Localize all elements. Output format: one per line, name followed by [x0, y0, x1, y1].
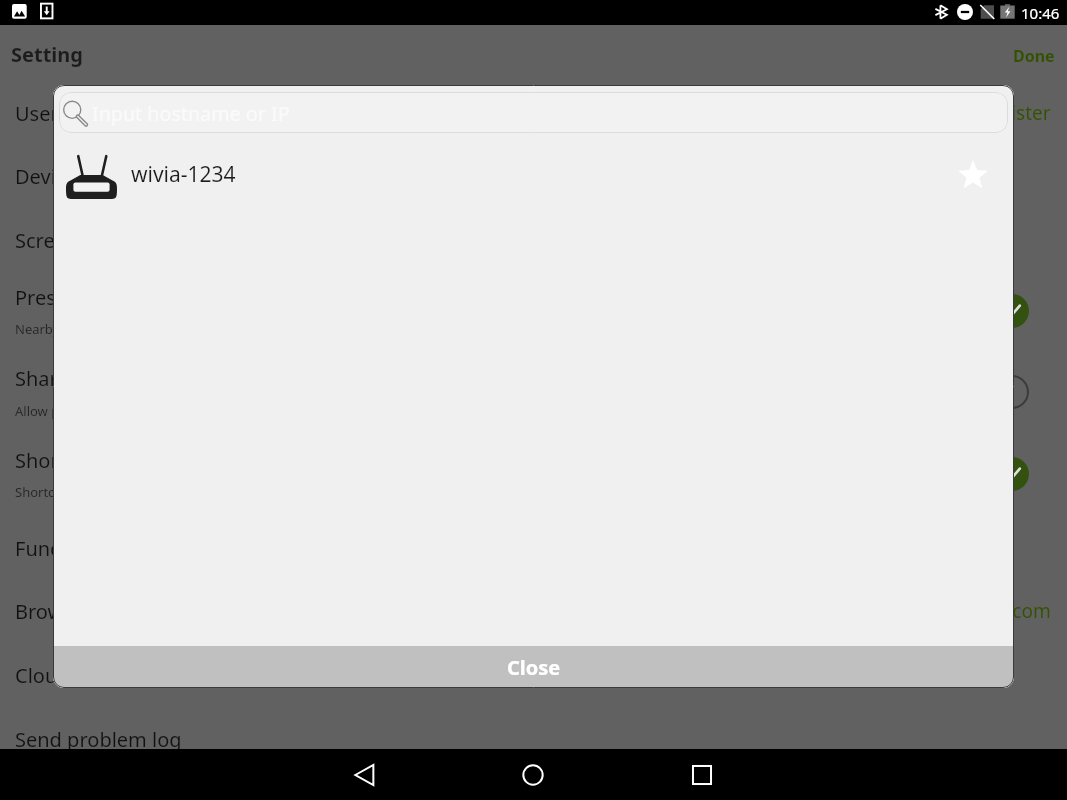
staticText: www.wivia.com [913, 598, 1051, 624]
staticText: Sharing [15, 365, 88, 392]
button[interactable]: Browser [0, 591, 1067, 631]
button[interactable]: Disabled [991, 371, 1033, 413]
button[interactable]: Recents [682, 755, 722, 795]
button[interactable]: Cloud storage [0, 655, 1067, 695]
button[interactable]: Shortcut [0, 440, 1067, 480]
staticText: Register [977, 100, 1051, 126]
button[interactable]: Presentation [0, 277, 1067, 317]
button[interactable]: Send problem log [0, 719, 1067, 759]
button[interactable]: Input hostname or IP [59, 92, 1008, 133]
staticText: Setting [11, 41, 83, 68]
staticText: Done [1013, 45, 1055, 67]
staticText: Allow people to share [15, 402, 147, 420]
staticText: Presentation [15, 284, 135, 311]
staticText: wivia-1234 [131, 160, 236, 189]
staticText: Close [507, 654, 561, 681]
staticText: Browser [15, 598, 93, 625]
staticText: 10:46 [1021, 3, 1060, 23]
staticText: Nearby devices [15, 320, 108, 338]
button[interactable]: Screen resolution [0, 220, 1067, 260]
button[interactable]: wivia-1234 [53, 133, 1014, 213]
button[interactable]: Sharing [0, 358, 1067, 398]
button[interactable]: Favorite [949, 151, 997, 199]
staticText: Shortcut [15, 447, 96, 474]
button[interactable]: Device name [0, 156, 1067, 196]
staticText: User name [15, 100, 118, 127]
staticText: Screen resolution [15, 227, 179, 254]
staticText: Shortcut on desktop [15, 483, 139, 501]
button[interactable]: User name [0, 93, 1067, 133]
button[interactable]: Back [345, 755, 385, 795]
button[interactable]: Enabled [991, 453, 1033, 495]
staticText: Device name [15, 163, 136, 190]
button[interactable]: Home [513, 755, 553, 795]
button[interactable]: Function [0, 528, 1067, 568]
staticText: Cloud storage [15, 662, 147, 689]
staticText: Function [15, 535, 97, 562]
staticText: Send problem log [15, 726, 182, 753]
button[interactable]: Enabled [991, 290, 1033, 332]
button[interactable]: Close [53, 646, 1014, 688]
